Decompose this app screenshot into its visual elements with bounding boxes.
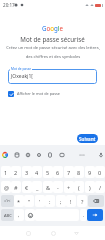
button[interactable]: ) <box>85 181 95 193</box>
button[interactable]: 5 <box>43 166 53 178</box>
staticText: " <box>28 198 31 205</box>
button[interactable]: 7 <box>64 166 74 178</box>
button[interactable]: 0 <box>95 166 105 178</box>
staticText: Google <box>42 24 63 32</box>
button[interactable]: Voice input <box>96 145 105 164</box>
staticText: ) <box>89 184 91 191</box>
button[interactable]: 8 <box>74 166 84 178</box>
button[interactable]: # <box>11 181 21 193</box>
button[interactable]: ; <box>56 195 66 207</box>
button[interactable]: : <box>45 195 55 207</box>
staticText: Suivant <box>79 136 96 142</box>
button[interactable]: " <box>24 195 34 207</box>
button[interactable]: Stickers <box>12 145 21 164</box>
staticText: 0 <box>98 169 102 176</box>
staticText: - <box>57 184 59 191</box>
button[interactable]: Backspace <box>88 195 104 207</box>
staticText: _ <box>36 184 39 191</box>
staticText: 8 <box>77 169 81 176</box>
staticText: Créez un mot de passe sécurisé avec des … <box>6 45 100 59</box>
staticText: . <box>83 212 85 219</box>
staticText: 4 <box>35 169 39 176</box>
staticText: Mot de passe <box>11 67 31 71</box>
button[interactable]: Emoji <box>25 209 35 221</box>
staticText: JOxeakj1[ <box>11 73 33 80</box>
button[interactable]: Home <box>47 226 59 240</box>
button[interactable]: ' <box>35 195 45 207</box>
staticText: =\< <box>4 198 11 204</box>
button[interactable]: Settings <box>34 145 43 164</box>
button[interactable]: & <box>43 181 53 193</box>
button[interactable]: Back <box>70 226 82 240</box>
staticText: ? <box>81 198 84 205</box>
button[interactable]: 6 <box>53 166 63 178</box>
staticText: 7 <box>67 169 71 176</box>
button[interactable]: _ <box>32 181 42 193</box>
button[interactable]: Recent apps <box>22 226 34 240</box>
button[interactable]: Comma <box>14 209 24 221</box>
button[interactable]: Enter <box>87 209 103 221</box>
button[interactable]: ! <box>66 195 76 207</box>
staticText: ( <box>78 184 80 191</box>
staticText: / <box>99 184 102 191</box>
button[interactable]: - <box>53 181 63 193</box>
button[interactable]: Themes <box>23 145 32 164</box>
staticText: ABC <box>4 213 12 218</box>
button[interactable]: Translate <box>57 145 66 164</box>
button[interactable]: 2 <box>11 166 21 178</box>
button[interactable]: JOxeakj1[ <box>8 69 97 84</box>
button[interactable]: ? <box>77 195 87 207</box>
button[interactable]: Afficher le mot de passe <box>8 90 60 97</box>
button[interactable]: ( <box>74 181 84 193</box>
staticText: # <box>14 184 18 191</box>
button[interactable]: @ <box>1 181 11 193</box>
button[interactable]: More options <box>77 145 86 164</box>
staticText: * <box>17 198 21 205</box>
staticText: 6 <box>56 169 60 176</box>
button[interactable]: 3 <box>22 166 32 178</box>
staticText: ; <box>60 198 62 205</box>
staticText: 2 <box>14 169 18 176</box>
staticText: + <box>67 184 71 191</box>
button[interactable]: Symbols <box>1 195 14 207</box>
button[interactable]: Period <box>80 209 87 221</box>
staticText: ' <box>39 198 41 205</box>
button[interactable]: Google <box>0 145 9 164</box>
button[interactable]: 1 <box>1 166 11 178</box>
button[interactable]: + <box>64 181 74 193</box>
staticText: € <box>25 184 29 191</box>
staticText: Afficher le mot de passe <box>17 91 60 96</box>
button[interactable]: 4 <box>32 166 42 178</box>
staticText: 3 <box>25 169 29 176</box>
staticText: , <box>18 212 20 219</box>
staticText: 9 <box>88 169 92 176</box>
staticText: & <box>46 184 51 191</box>
staticText: Mot de passe sécurisé <box>20 35 85 43</box>
staticText: : <box>49 198 51 205</box>
button[interactable]: € <box>22 181 32 193</box>
staticText: @ <box>4 184 9 191</box>
staticText: ! <box>70 198 72 205</box>
button[interactable]: * <box>14 195 24 207</box>
button[interactable]: Suivant <box>77 134 98 143</box>
staticText: 1 <box>4 169 8 176</box>
button[interactable]: 9 <box>85 166 95 178</box>
staticText: 20:17 <box>3 2 15 8</box>
button[interactable]: Clipboard <box>45 145 54 164</box>
button[interactable]: Letters <box>1 209 14 221</box>
button[interactable]: / <box>95 181 105 193</box>
staticText: 5 <box>46 169 50 176</box>
